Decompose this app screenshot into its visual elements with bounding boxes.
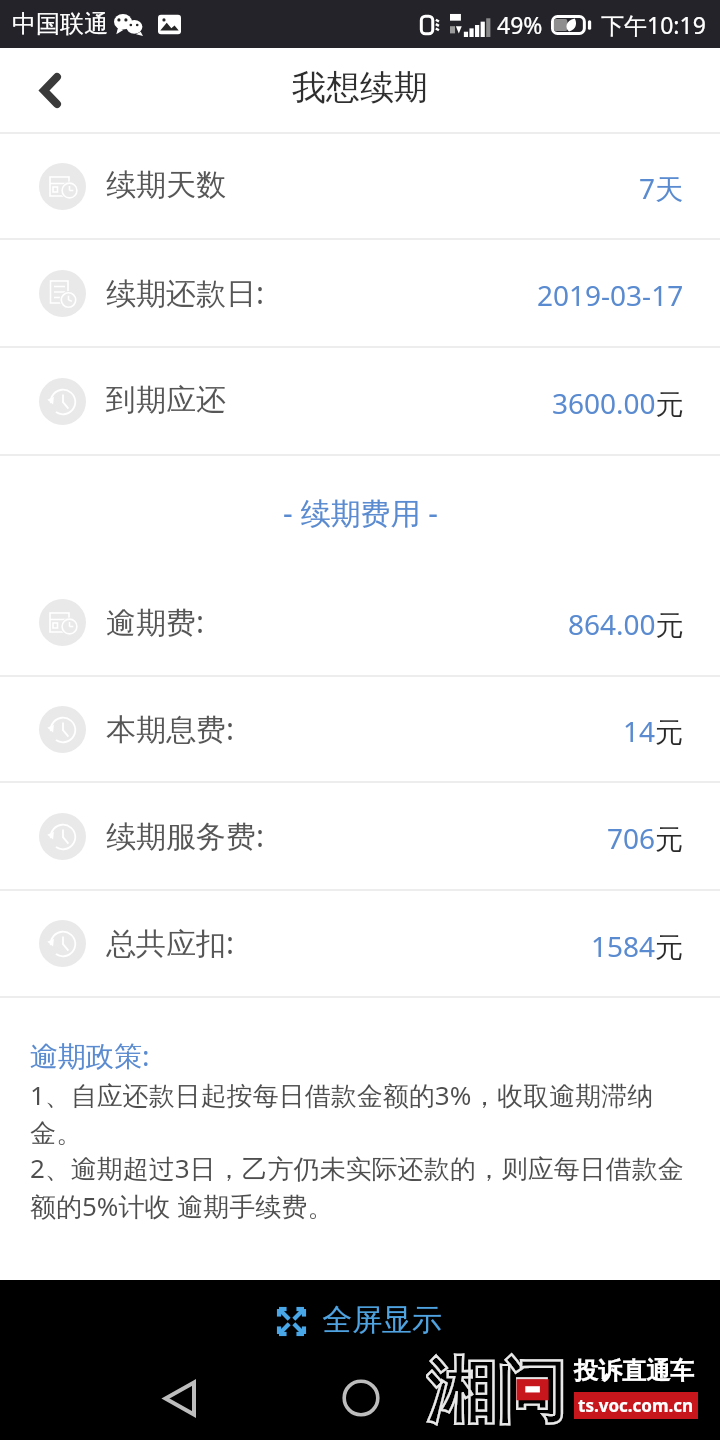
- button[interactable]: 续期服务费:: [0, 783, 720, 889]
- staticText: 总共应扣:: [106, 922, 235, 963]
- staticText: 续期天数: [106, 166, 226, 204]
- staticText: 下午10:19: [601, 9, 706, 40]
- staticText: 1584元: [591, 927, 684, 965]
- staticText: 14元: [623, 712, 684, 750]
- button[interactable]: 到期应还: [0, 348, 720, 454]
- staticText: 逾期政策:: [30, 1036, 150, 1074]
- button[interactable]: Back: [157, 1376, 201, 1420]
- staticText: 1、自应还款日起按每日借款金额的3%，收取逾期滞纳金。: [30, 1077, 702, 1150]
- staticText: 3600.00元: [552, 384, 684, 422]
- staticText: 我想续期: [292, 66, 428, 109]
- staticText: 2019-03-17: [537, 276, 684, 314]
- staticText: 续期服务费:: [106, 815, 265, 856]
- staticText: ts.voc.com.cn: [578, 1394, 694, 1417]
- staticText: 投诉直通车: [574, 1356, 694, 1386]
- button[interactable]: Home: [339, 1376, 383, 1420]
- staticText: 2、逾期超过3日，乙方仍未实际还款的，则应每日借款金额的5%计收 逾期手续费。: [30, 1150, 702, 1224]
- button[interactable]: 本期息费:: [0, 677, 720, 781]
- staticText: 49%: [497, 9, 543, 40]
- button[interactable]: 续期还款日:: [0, 240, 720, 346]
- button[interactable]: 逾期费:: [0, 569, 720, 675]
- staticText: 中国联通: [12, 9, 108, 39]
- button[interactable]: Back: [0, 48, 100, 132]
- staticText: 706元: [607, 819, 684, 857]
- staticText: 全屏显示: [322, 1301, 442, 1339]
- staticText: 864.00元: [568, 605, 684, 643]
- staticText: 湘问: [426, 1348, 566, 1426]
- button[interactable]: 续期天数: [0, 134, 720, 238]
- staticText: 本期息费:: [106, 708, 235, 749]
- staticText: 逾期费:: [106, 601, 205, 642]
- staticText: - 续期费用 -: [283, 492, 438, 533]
- staticText: 7天: [639, 169, 684, 207]
- staticText: 到期应还: [106, 381, 226, 419]
- button[interactable]: 总共应扣:: [0, 891, 720, 996]
- button[interactable]: 全屏显示: [277, 1302, 442, 1340]
- staticText: 续期还款日:: [106, 272, 265, 313]
